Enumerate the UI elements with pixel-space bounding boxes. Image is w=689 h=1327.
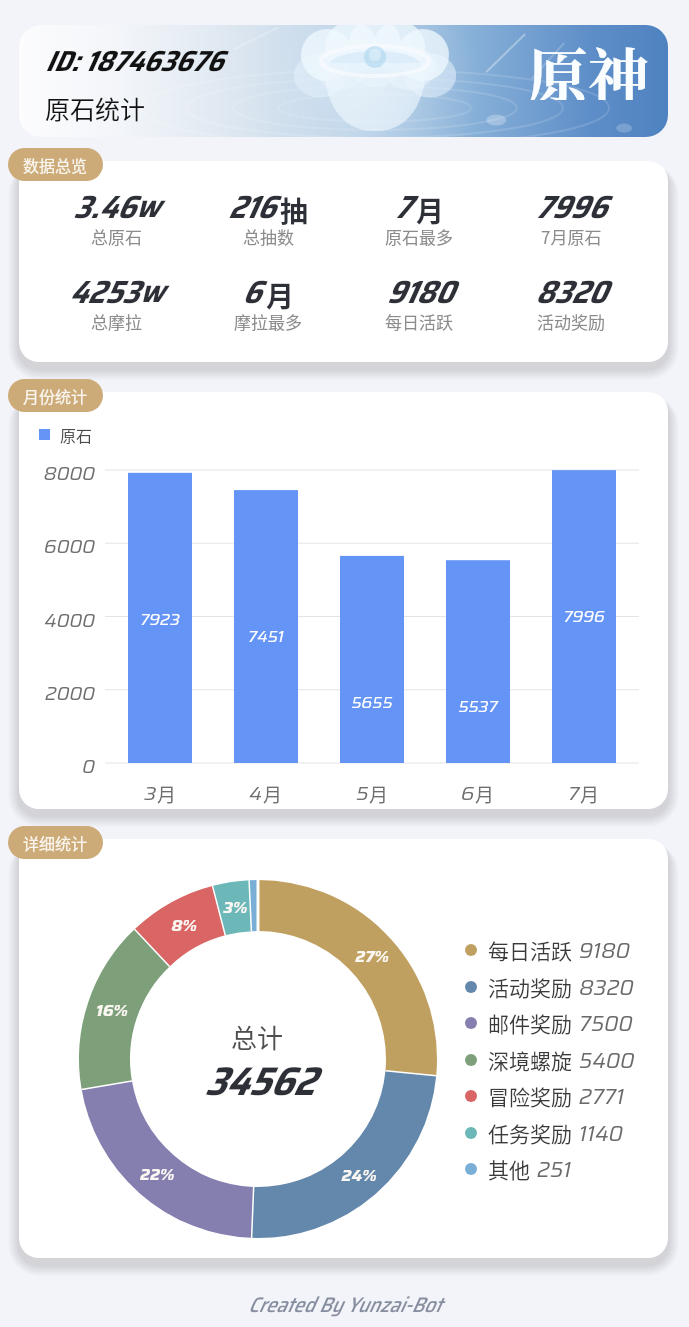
button[interactable]: 详细统计: [8, 826, 103, 859]
staticText: 月: [157, 780, 177, 808]
staticText: 7月原石: [541, 224, 602, 249]
staticText: w: [139, 266, 163, 316]
staticText: 月: [475, 780, 495, 808]
staticText: 8320: [579, 971, 634, 1004]
staticText: 任务奖励: [488, 1118, 572, 1148]
staticText: 摩拉最多: [234, 309, 302, 334]
staticText: 4000: [0, 605, 95, 635]
staticText: 月: [266, 275, 295, 316]
staticText: 22%: [117, 1162, 197, 1187]
staticText: 6: [461, 777, 475, 808]
staticText: 3: [144, 777, 157, 808]
staticText: 4: [249, 777, 263, 808]
button[interactable]: 深境螺旋: [465, 1042, 635, 1078]
staticText: 9180: [386, 267, 453, 317]
staticText: 7: [394, 182, 411, 232]
staticText: 6000: [0, 531, 95, 561]
staticText: 月份统计: [23, 384, 88, 407]
staticText: 其他: [488, 1154, 530, 1184]
button[interactable]: 任务奖励: [465, 1115, 623, 1151]
staticText: 活动奖励: [537, 309, 605, 334]
button[interactable]: 冒险奖励: [465, 1078, 625, 1114]
staticText: 34562: [149, 1050, 369, 1113]
staticText: 5400: [579, 1044, 635, 1077]
button[interactable]: 邮件奖励: [465, 1005, 633, 1041]
staticText: 邮件奖励: [488, 1008, 572, 1038]
staticText: 9180: [579, 934, 630, 967]
staticText: 月: [263, 780, 283, 808]
staticText: 2000: [0, 678, 95, 708]
staticText: 3.46: [73, 182, 135, 232]
staticText: 抽: [280, 190, 309, 231]
staticText: 月: [580, 780, 600, 808]
staticText: 4253: [69, 267, 139, 317]
staticText: w: [135, 181, 159, 231]
staticText: 深境螺旋: [488, 1045, 572, 1075]
staticText: 原石统计: [45, 90, 146, 126]
staticText: 7: [568, 777, 580, 808]
staticText: 总原石: [91, 224, 142, 249]
staticText: 冒险奖励: [488, 1081, 572, 1111]
button[interactable]: 每日活跃: [465, 932, 630, 968]
staticText: 8000: [0, 458, 95, 488]
staticText: 2771: [579, 1080, 625, 1113]
staticText: 月: [369, 780, 389, 808]
staticText: 27%: [332, 944, 412, 969]
staticText: 7451: [216, 624, 316, 649]
button[interactable]: 原石: [39, 423, 93, 446]
staticText: 原神: [527, 30, 650, 100]
staticText: 总摩拉: [91, 309, 142, 334]
staticText: 5537: [428, 694, 528, 719]
button[interactable]: 数据总览: [8, 148, 103, 181]
staticText: 活动奖励: [488, 972, 572, 1002]
staticText: 8%: [144, 913, 224, 938]
staticText: ID: 187463676: [45, 38, 223, 84]
staticText: 详细统计: [23, 831, 88, 854]
staticText: 24%: [319, 1163, 399, 1188]
staticText: 8320: [535, 267, 607, 317]
staticText: 7996: [534, 604, 634, 629]
staticText: 月: [416, 190, 445, 231]
staticText: 总抽数: [243, 224, 294, 249]
staticText: 16%: [72, 998, 152, 1023]
staticText: 每日活跃: [385, 309, 453, 334]
staticText: 251: [537, 1153, 572, 1186]
staticText: 7500: [579, 1007, 633, 1040]
button[interactable]: 活动奖励: [465, 969, 634, 1005]
staticText: 7923: [110, 607, 210, 632]
staticText: 数据总览: [23, 153, 88, 176]
staticText: 216: [228, 182, 275, 232]
staticText: 原石最多: [385, 224, 453, 249]
staticText: 3%: [195, 895, 275, 920]
staticText: 每日活跃: [488, 935, 572, 965]
staticText: 7996: [535, 182, 607, 232]
staticText: 5655: [322, 690, 422, 715]
button[interactable]: 其他: [465, 1151, 572, 1187]
staticText: 5: [356, 777, 369, 808]
staticText: 原石: [60, 423, 93, 446]
button[interactable]: 月份统计: [8, 379, 103, 412]
staticText: 0: [0, 751, 95, 781]
staticText: 6: [242, 267, 261, 317]
staticText: 1140: [579, 1117, 623, 1150]
staticText: 总计: [177, 1018, 337, 1056]
staticText: Created By Yunzai-Bot: [248, 1288, 442, 1321]
